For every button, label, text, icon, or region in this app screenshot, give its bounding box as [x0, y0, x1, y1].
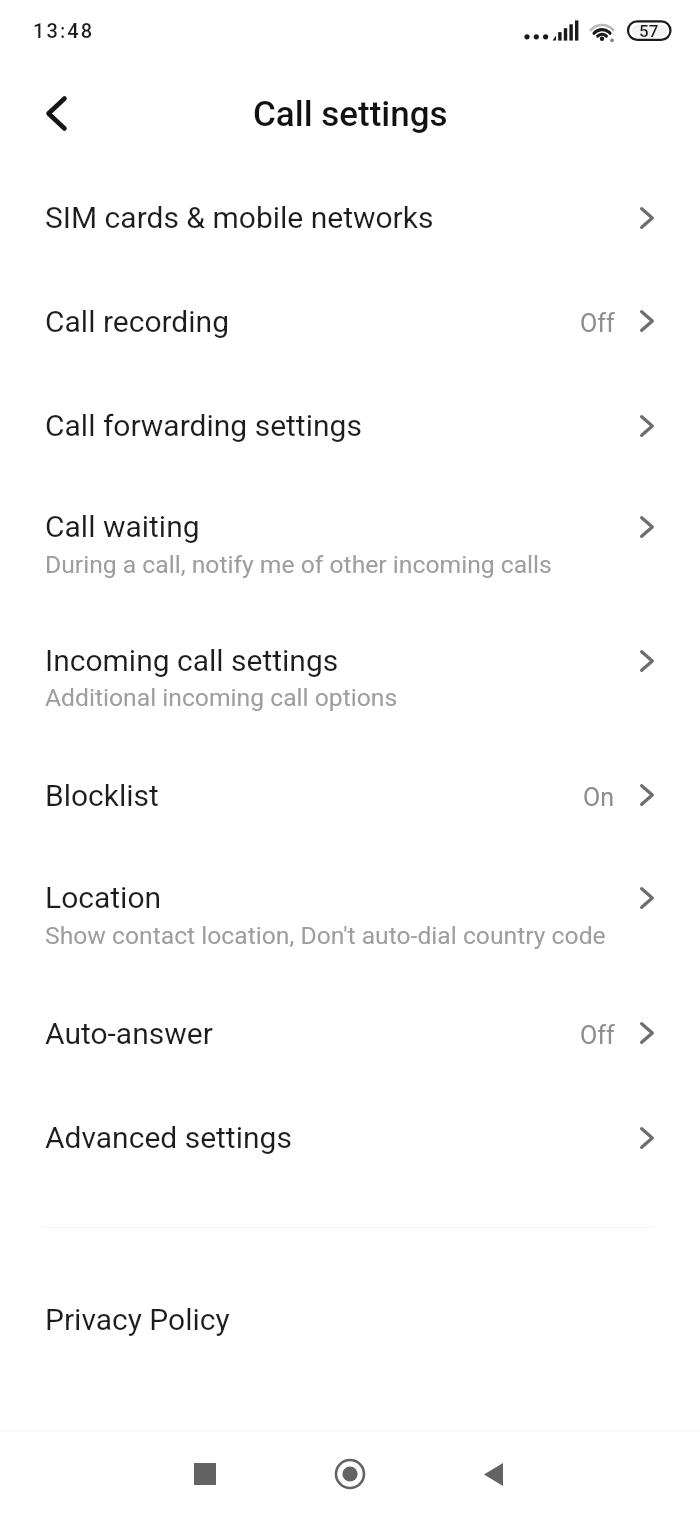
- staticText: Call waiting: [45, 509, 200, 544]
- button[interactable]: Advanced settings: [0, 1088, 700, 1192]
- button[interactable]: Auto-answer: [0, 984, 700, 1088]
- staticText: During a call, notify me of other incomi…: [45, 550, 552, 579]
- staticText: Off: [580, 1021, 615, 1050]
- button[interactable]: Location: [0, 850, 700, 984]
- staticText: Auto-answer: [45, 1016, 213, 1051]
- staticText: Show contact location, Don't auto-dial c…: [45, 921, 606, 950]
- button[interactable]: SIM cards & mobile networks: [0, 166, 700, 270]
- staticText: Location: [45, 880, 162, 915]
- button[interactable]: Call recording: [0, 270, 700, 374]
- staticText: Call settings: [253, 94, 448, 135]
- staticText: Call forwarding settings: [45, 408, 362, 443]
- staticText: Blocklist: [45, 778, 159, 813]
- button[interactable]: Blocklist: [0, 746, 700, 850]
- staticText: On: [583, 783, 615, 812]
- staticText: Privacy Policy: [45, 1302, 230, 1337]
- button[interactable]: Back: [458, 1439, 528, 1509]
- staticText: Call recording: [45, 304, 229, 339]
- staticText: Off: [580, 309, 615, 338]
- staticText: Additional incoming call options: [45, 683, 398, 712]
- staticText: 13:48: [33, 19, 95, 42]
- button[interactable]: Home: [315, 1439, 385, 1509]
- staticText: SIM cards & mobile networks: [45, 200, 434, 235]
- button[interactable]: Recents: [170, 1439, 240, 1509]
- staticText: 57: [639, 21, 659, 41]
- button[interactable]: Back: [24, 81, 88, 145]
- button[interactable]: Privacy Policy: [0, 1275, 700, 1367]
- button[interactable]: Call forwarding settings: [0, 374, 700, 478]
- staticText: Advanced settings: [45, 1120, 292, 1155]
- staticText: Incoming call settings: [45, 643, 339, 678]
- button[interactable]: Call waiting: [0, 478, 700, 612]
- button[interactable]: Incoming call settings: [0, 612, 700, 746]
